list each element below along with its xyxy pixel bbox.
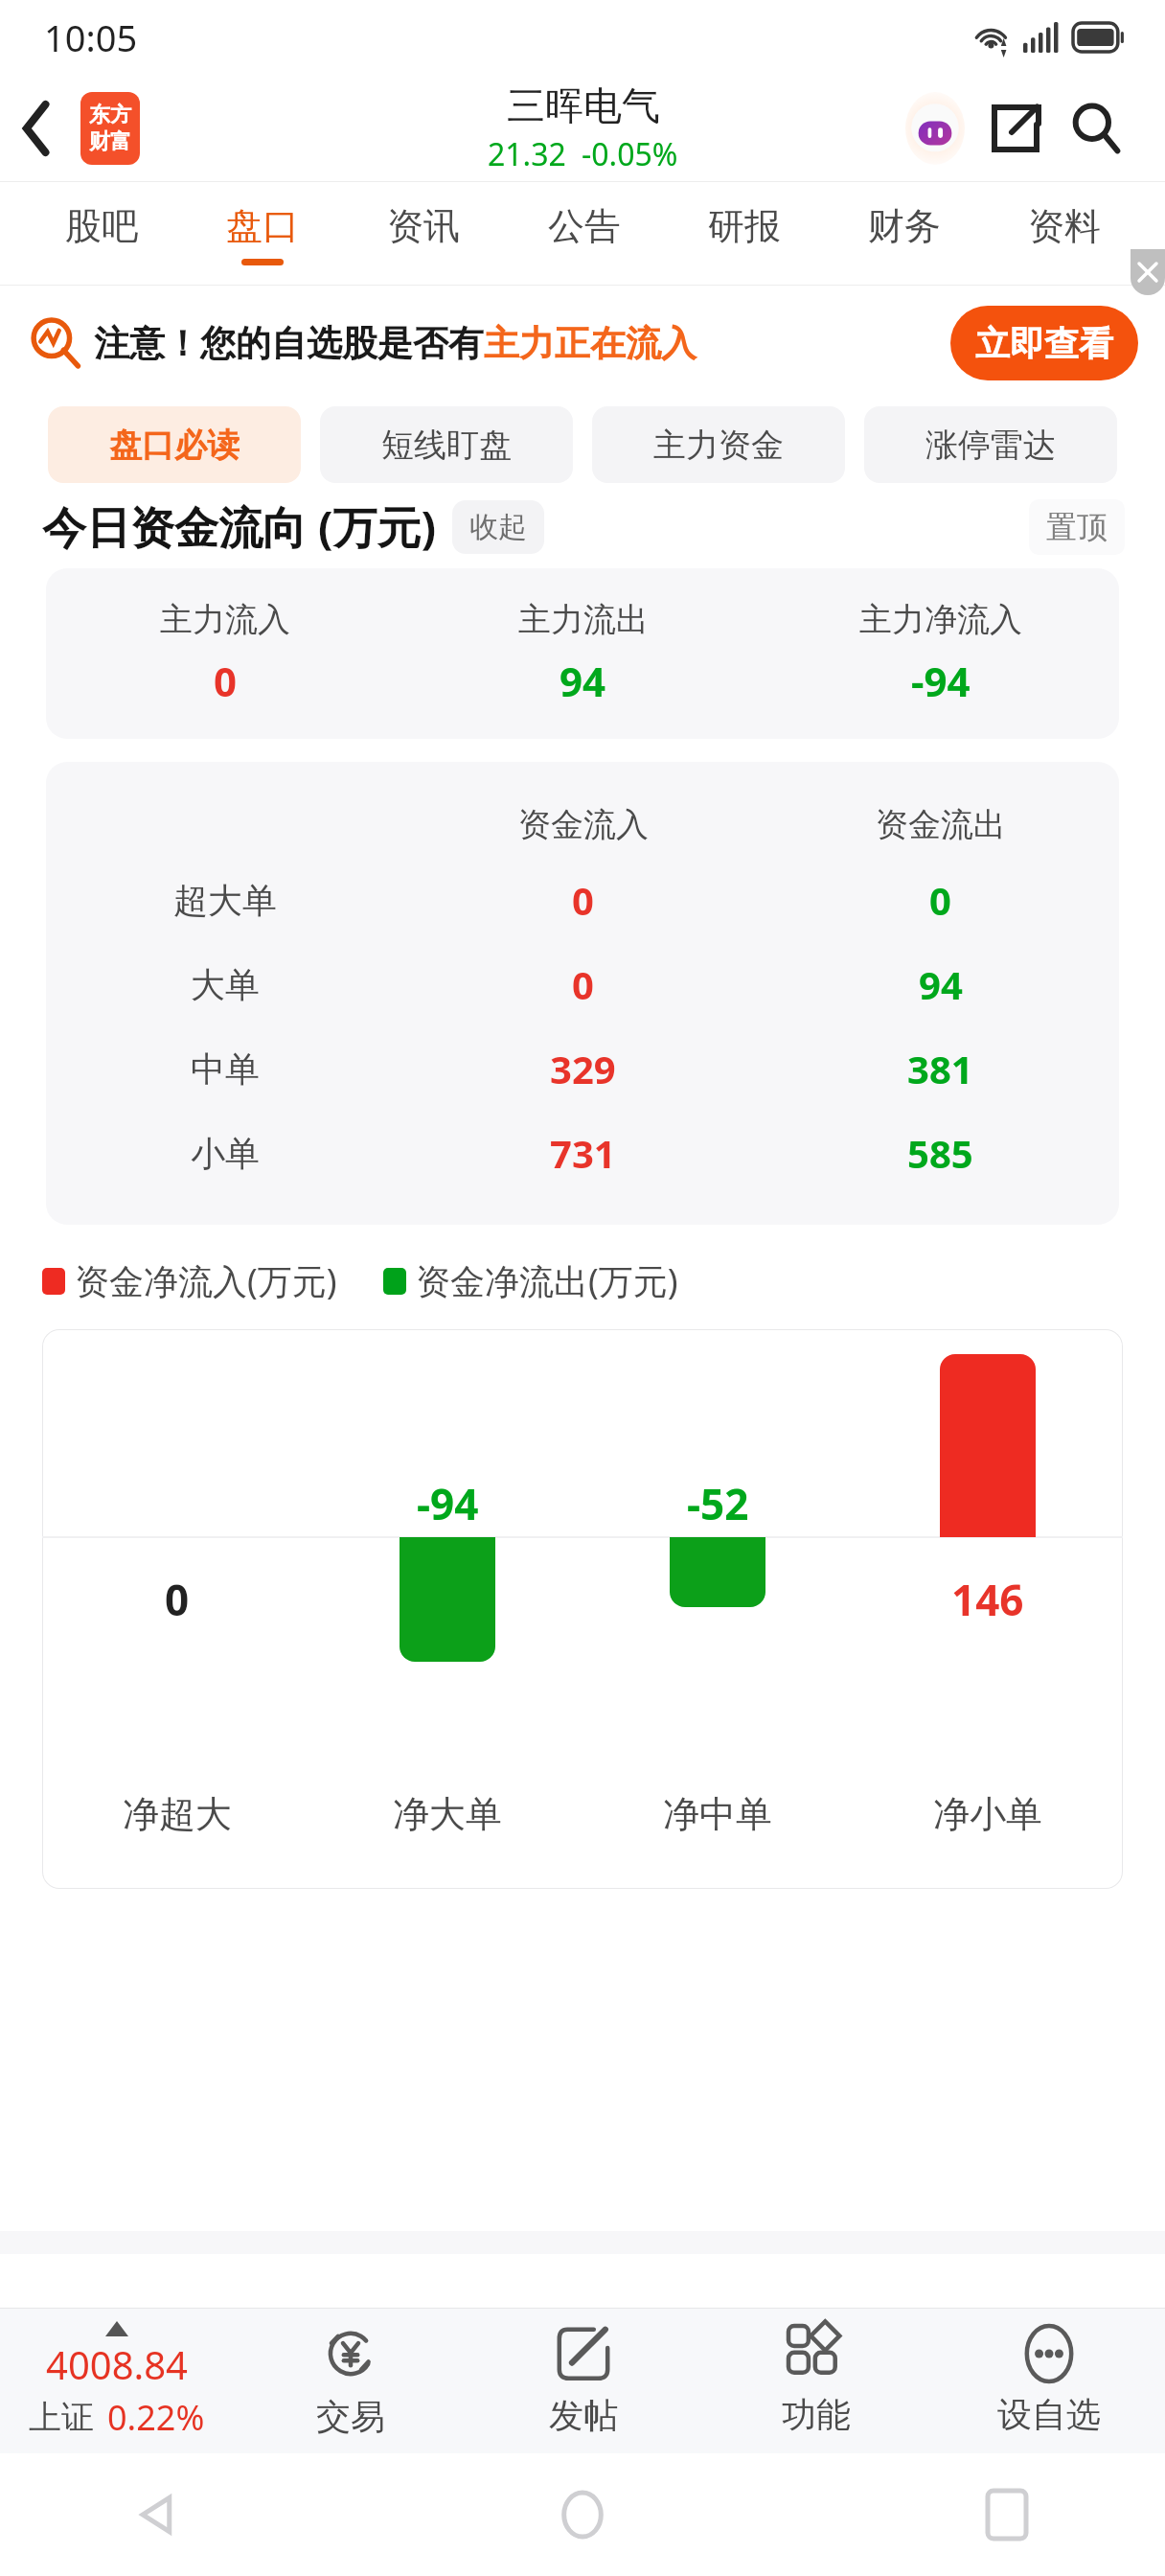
staticText: 研报 xyxy=(708,203,781,249)
staticText: 21.32 xyxy=(488,133,566,175)
button[interactable]: 资料 xyxy=(984,182,1144,286)
button[interactable]: 交易 xyxy=(234,2308,467,2453)
button[interactable]: 股吧 xyxy=(21,182,182,286)
staticText: 94 xyxy=(560,654,606,708)
button[interactable]: 涨停雷达 xyxy=(864,406,1117,483)
staticText: 主力净流入 xyxy=(859,599,1022,640)
staticText: 功能 xyxy=(782,2393,851,2436)
button[interactable]: 资金流入 xyxy=(46,762,1119,1225)
staticText: 涨停雷达 xyxy=(925,425,1056,466)
button[interactable]: 返回 xyxy=(0,90,77,167)
staticText: 财富 xyxy=(89,128,131,155)
button[interactable]: 研报 xyxy=(664,182,824,286)
button[interactable]: 0 xyxy=(42,1329,1123,1889)
staticText: 资金流出 xyxy=(876,804,1006,845)
staticText: 主力正在流入 xyxy=(484,321,697,366)
staticText: 资金净流入(万元) xyxy=(75,1257,337,1304)
staticText: 财务 xyxy=(868,203,941,249)
staticText: 4008.84 xyxy=(46,2338,188,2390)
staticText: 资讯 xyxy=(387,203,460,249)
staticText: 收起 xyxy=(469,509,527,545)
staticText: 大单 xyxy=(191,963,260,1006)
staticText: 东方 xyxy=(89,102,131,128)
staticText: 资金净流出(万元) xyxy=(416,1257,678,1304)
staticText: 置顶 xyxy=(1046,508,1108,546)
staticText: 今日资金流向 (万元) xyxy=(42,496,437,557)
staticText: 0 xyxy=(214,654,238,708)
button[interactable]: 盘口必读 xyxy=(48,406,301,483)
staticText: -94 xyxy=(417,1475,479,1532)
button[interactable]: AI 助手 xyxy=(895,88,975,169)
staticText: 短线盯盘 xyxy=(381,425,512,466)
staticText: 主力资金 xyxy=(653,425,784,466)
staticText: 资料 xyxy=(1028,203,1101,249)
staticText: -94 xyxy=(911,654,971,708)
button[interactable]: 返回 xyxy=(115,2472,201,2558)
staticText: 盘口 xyxy=(226,203,299,249)
button[interactable]: 立即查看 xyxy=(950,306,1138,380)
staticText: 上证 xyxy=(29,2397,94,2438)
staticText: 585 xyxy=(907,1127,973,1179)
staticText: 设自选 xyxy=(997,2393,1101,2436)
staticText: 立即查看 xyxy=(975,322,1113,365)
staticText: 10:05 xyxy=(44,12,138,62)
staticText: 资金流入 xyxy=(518,804,649,845)
staticText: 净超大 xyxy=(123,1791,232,1837)
staticText: 0 xyxy=(572,958,594,1010)
staticText: -0.05% xyxy=(582,133,678,175)
staticText: 94 xyxy=(919,958,963,1010)
button[interactable]: 主屏幕 xyxy=(539,2472,626,2558)
staticText: 0.22% xyxy=(107,2394,205,2441)
staticText: 净大单 xyxy=(393,1791,502,1837)
button[interactable]: 盘口 xyxy=(182,182,343,286)
button[interactable]: 功能 xyxy=(699,2308,932,2453)
button[interactable]: 搜索 xyxy=(1056,88,1136,169)
button[interactable]: 设自选 xyxy=(932,2308,1165,2453)
staticText: 0 xyxy=(929,874,951,926)
staticText: 盘口必读 xyxy=(109,425,240,466)
button[interactable]: 财务 xyxy=(824,182,984,286)
staticText: 731 xyxy=(550,1127,616,1179)
staticText: 交易 xyxy=(316,2395,385,2438)
staticText: 净中单 xyxy=(663,1791,772,1837)
button[interactable]: 收起 xyxy=(452,500,544,554)
staticText: 发帖 xyxy=(549,2394,618,2437)
button[interactable]: 东方财富 xyxy=(80,92,140,165)
staticText: 146 xyxy=(951,1571,1024,1628)
button[interactable]: 资讯 xyxy=(343,182,504,286)
staticText: 主力流出 xyxy=(518,599,649,640)
staticText: 381 xyxy=(907,1043,973,1094)
button[interactable]: 最近任务 xyxy=(964,2472,1050,2558)
staticText: 0 xyxy=(572,874,594,926)
button[interactable]: 三晖电气 xyxy=(488,81,678,175)
staticText: 公告 xyxy=(548,203,621,249)
button[interactable]: 关闭 xyxy=(1131,249,1165,295)
button[interactable]: 置顶 xyxy=(1029,499,1125,555)
staticText: 股吧 xyxy=(65,203,138,249)
staticText: 小单 xyxy=(191,1132,260,1175)
staticText: 329 xyxy=(550,1043,616,1094)
staticText: -52 xyxy=(687,1475,749,1532)
button[interactable]: 短线盯盘 xyxy=(320,406,573,483)
staticText: 净小单 xyxy=(933,1791,1042,1837)
staticText: 主力流入 xyxy=(160,599,290,640)
staticText: 注意！您的自选股是否有 xyxy=(94,321,484,366)
staticText: 0 xyxy=(165,1571,190,1628)
button[interactable]: 公告 xyxy=(504,182,664,286)
staticText: 超大单 xyxy=(173,879,277,922)
button[interactable]: 主力资金 xyxy=(592,406,845,483)
button[interactable]: 分享 xyxy=(975,88,1056,169)
button[interactable]: 主力流入 xyxy=(46,568,1119,739)
button[interactable]: 4008.84 xyxy=(0,2308,234,2453)
button[interactable]: 发帖 xyxy=(467,2308,699,2453)
staticText: 中单 xyxy=(191,1047,260,1091)
staticText: 三晖电气 xyxy=(507,81,660,129)
